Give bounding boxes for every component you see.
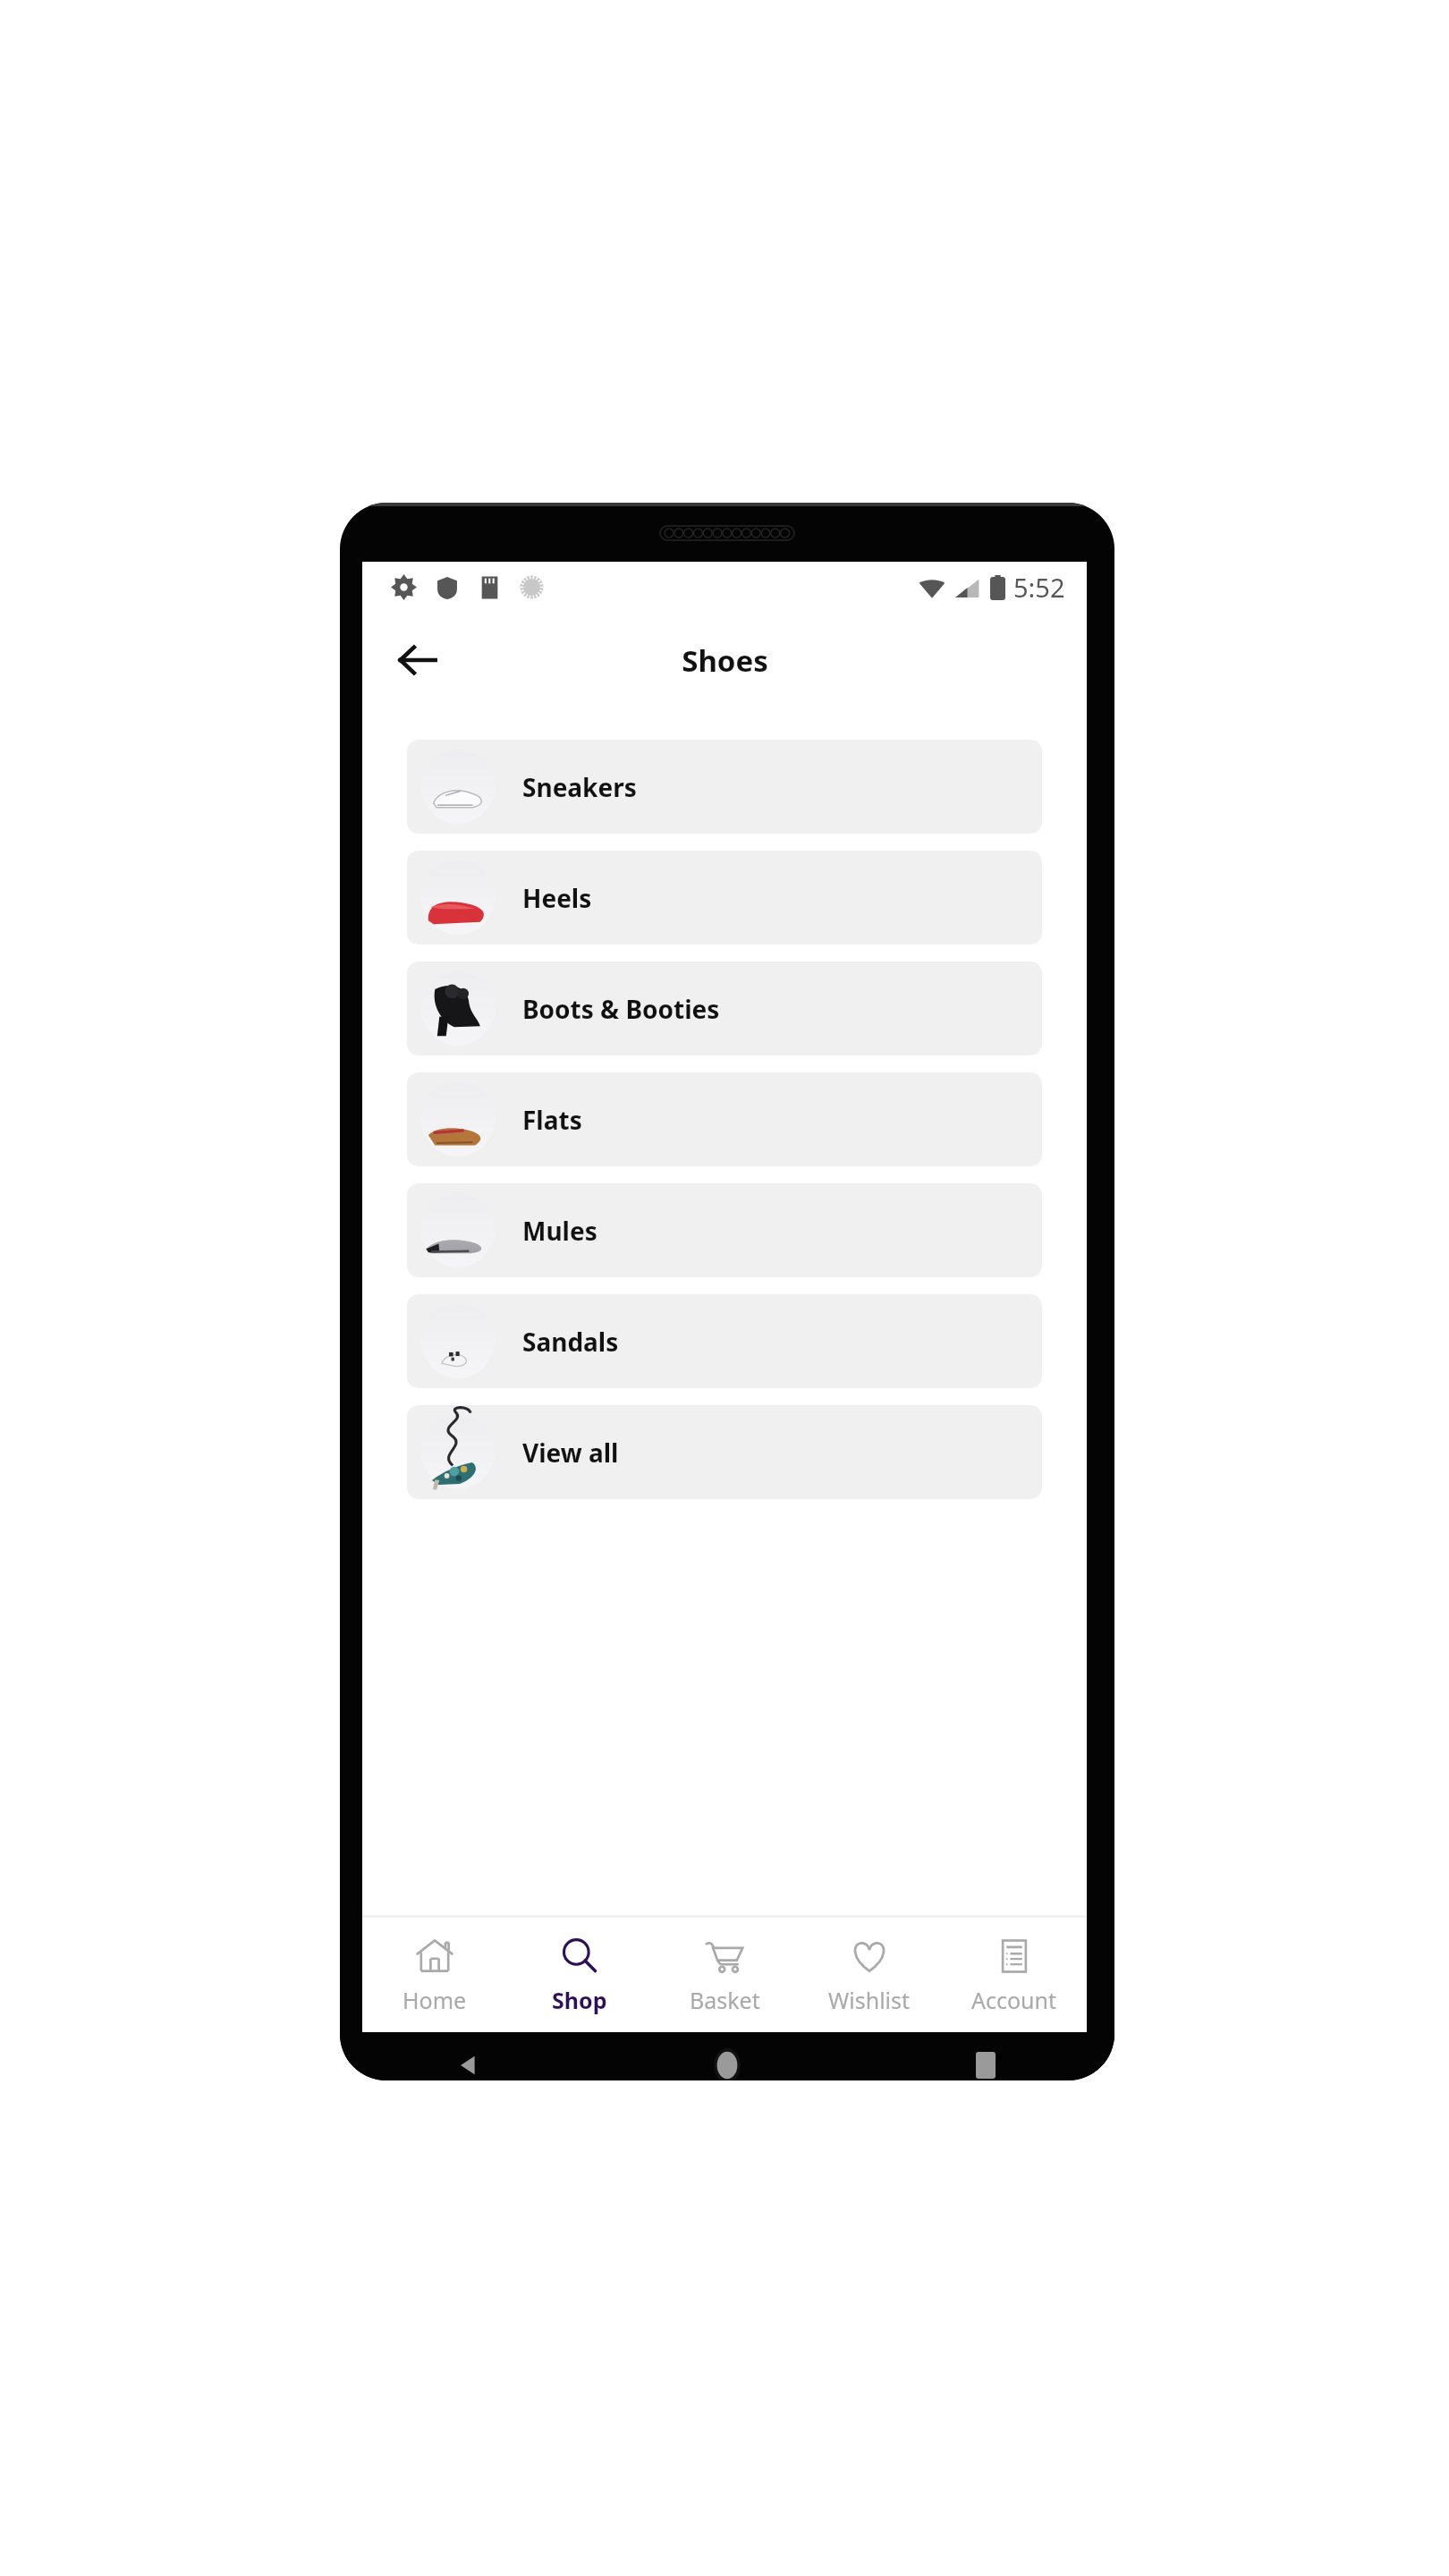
- staticText: View all: [522, 1436, 619, 1470]
- staticText: Shop: [552, 1985, 607, 2015]
- button[interactable]: Sneakers: [407, 740, 1042, 834]
- button[interactable]: Sandals: [407, 1294, 1042, 1388]
- button[interactable]: Back: [340, 2041, 597, 2080]
- button[interactable]: Boots & Booties: [407, 962, 1042, 1055]
- staticText: Heels: [522, 881, 592, 915]
- staticText: Wishlist: [828, 1985, 911, 2015]
- button[interactable]: Basket: [652, 1918, 797, 2032]
- staticText: Sneakers: [522, 770, 637, 804]
- button[interactable]: Recent apps: [856, 2041, 1114, 2080]
- button[interactable]: View all: [407, 1405, 1042, 1499]
- staticText: Basket: [690, 1985, 760, 2015]
- staticText: Shoes: [682, 640, 768, 681]
- staticText: Home: [402, 1985, 467, 2015]
- button[interactable]: Account: [942, 1918, 1087, 2032]
- staticText: Sandals: [522, 1325, 619, 1359]
- button[interactable]: Home: [597, 2041, 856, 2080]
- button[interactable]: Shop: [507, 1918, 652, 2032]
- button[interactable]: Home: [362, 1918, 507, 2032]
- button[interactable]: Flats: [407, 1072, 1042, 1166]
- button[interactable]: Mules: [407, 1183, 1042, 1277]
- button[interactable]: Back: [384, 626, 452, 694]
- staticText: Boots & Booties: [522, 992, 720, 1026]
- staticText: Flats: [522, 1103, 582, 1137]
- staticText: Mules: [522, 1214, 597, 1248]
- staticText: 5:52: [1013, 570, 1065, 605]
- button[interactable]: Wishlist: [797, 1918, 942, 2032]
- staticText: Account: [971, 1985, 1057, 2015]
- button[interactable]: Heels: [407, 851, 1042, 945]
